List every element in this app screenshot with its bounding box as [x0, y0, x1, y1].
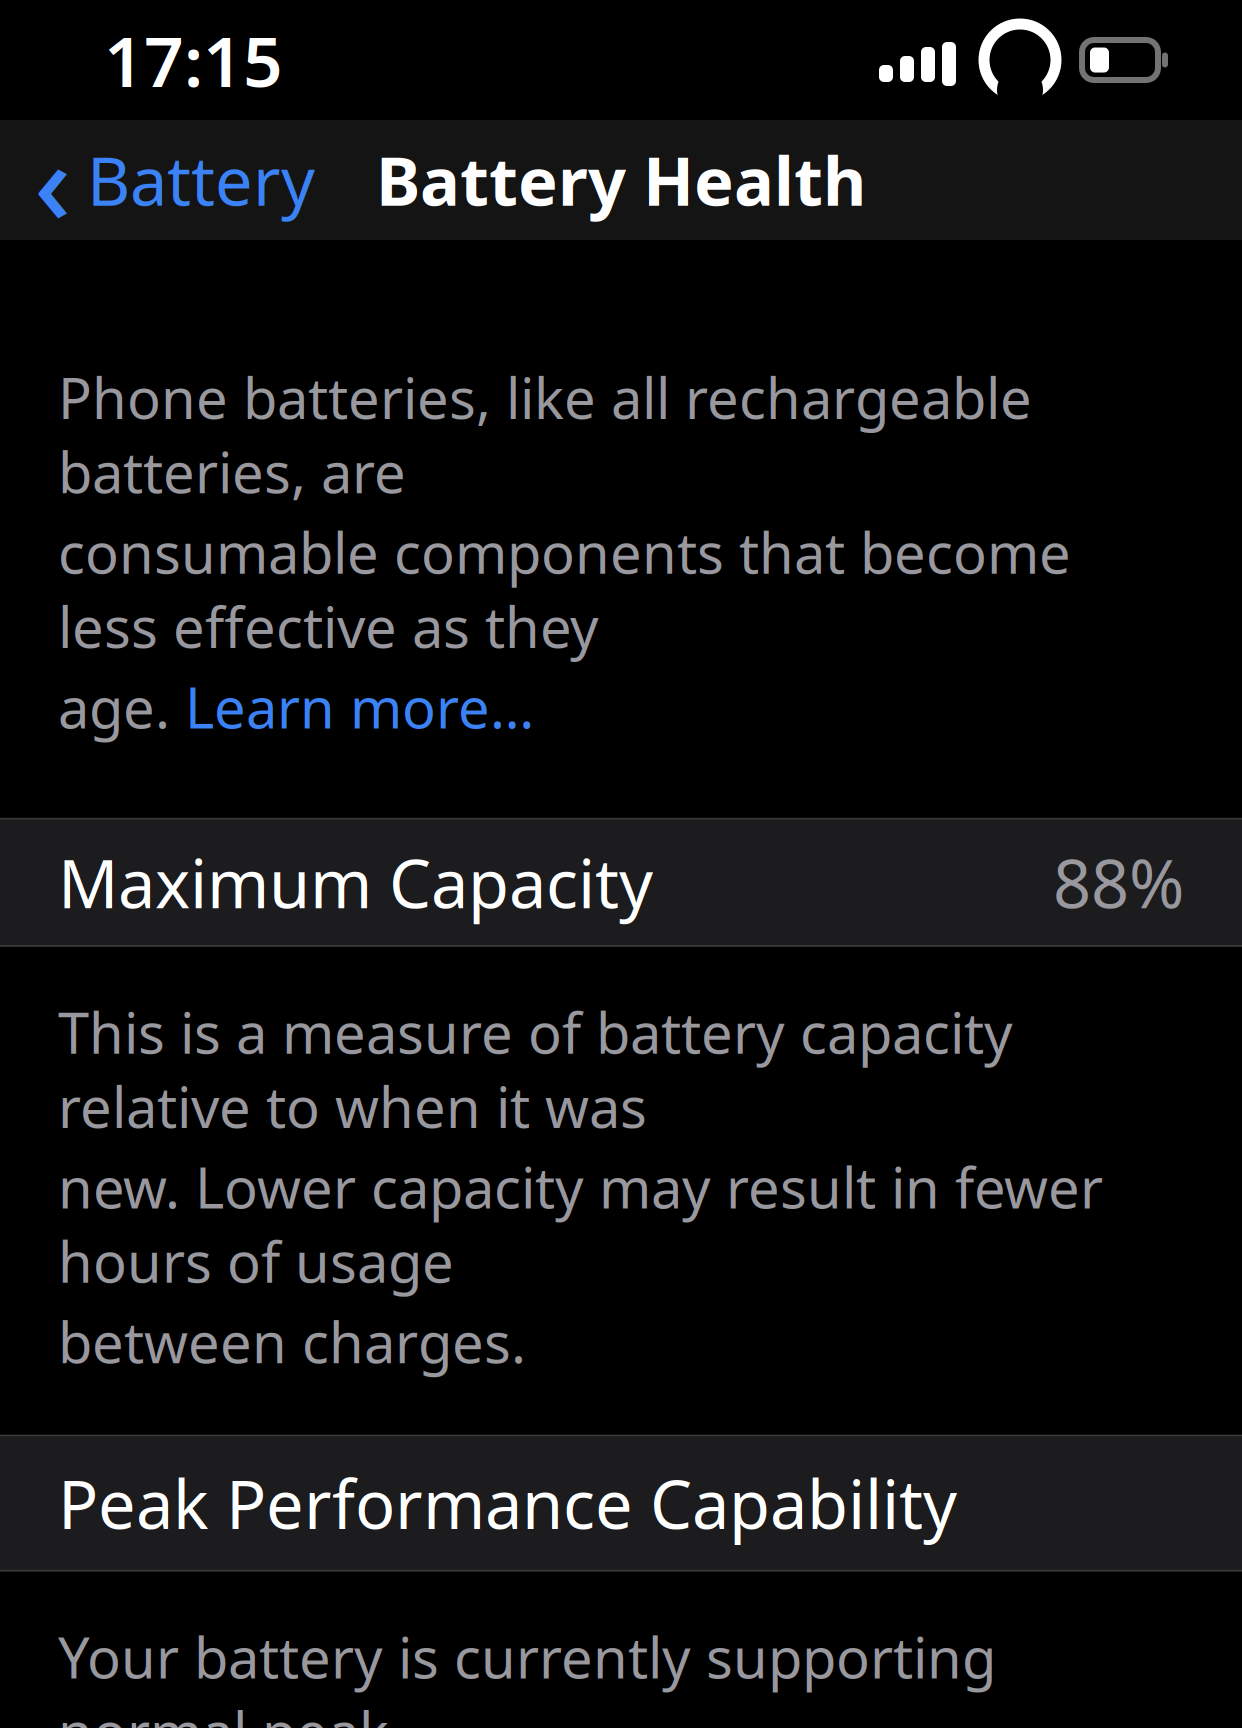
- staticText: Phone batteries, like all rechargeable b…: [58, 360, 1032, 509]
- button[interactable]: Maximum Capacity: [0, 820, 1242, 945]
- button[interactable]: ‹: [0, 120, 335, 240]
- staticText: Learn more…: [185, 669, 534, 744]
- staticText: consumable components that become less e…: [58, 515, 1071, 663]
- staticText: Battery Health: [376, 136, 866, 224]
- staticText: age.: [58, 669, 185, 744]
- button[interactable]: Learn more…: [185, 669, 534, 744]
- staticText: Maximum Capacity: [58, 838, 653, 927]
- staticText: Peak Performance Capability: [58, 1459, 957, 1547]
- staticText: Your battery is currently supporting nor…: [58, 1620, 996, 1728]
- staticText: new. Lower capacity may result in fewer …: [58, 1150, 1103, 1298]
- staticText: 88%: [1053, 838, 1184, 927]
- button[interactable]: Peak Performance Capability: [0, 1437, 1242, 1570]
- staticText: 17:15: [104, 14, 283, 106]
- staticText: This is a measure of battery capacity re…: [58, 995, 1013, 1143]
- staticText: Battery: [87, 136, 315, 224]
- staticText: between charges.: [58, 1304, 526, 1379]
- staticText: ‹: [34, 104, 71, 256]
